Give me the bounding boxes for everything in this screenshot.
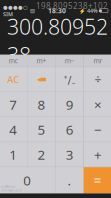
button[interactable]: ÷ [84, 67, 111, 92]
button[interactable]: Backspace [27, 67, 55, 92]
staticText: 8 [37, 96, 45, 113]
staticText: ▤ [30, 8, 35, 14]
staticText: ⚡ 44% [79, 7, 98, 14]
staticText: 3 [66, 146, 74, 163]
staticText: 1 [9, 146, 17, 163]
staticText: × [94, 96, 102, 113]
staticText: 2 [37, 146, 45, 163]
staticText: 300.8095238 [7, 12, 108, 69]
staticText: ⁺∕₋ [64, 72, 76, 87]
button[interactable]: × [84, 92, 111, 117]
staticText: ●●●●○ SIM [3, 4, 28, 18]
button[interactable]: 2 [27, 142, 55, 167]
staticText: − [94, 121, 102, 138]
button[interactable]: 7 [0, 92, 27, 117]
button[interactable]: − [84, 117, 111, 142]
staticText: m+ [36, 56, 46, 65]
button[interactable]: = [84, 167, 111, 193]
staticText: AC [7, 73, 19, 86]
button[interactable]: 0 [0, 167, 55, 193]
staticText: 7 [9, 96, 17, 113]
button[interactable]: m+ [27, 55, 55, 67]
staticText: by JMS.tool from magic.best [0, 185, 21, 192]
button[interactable]: 6 [56, 117, 84, 142]
button[interactable]: m− [56, 55, 84, 67]
staticText: 5 [37, 121, 45, 138]
button[interactable]: 1 [0, 142, 27, 167]
staticText: 18:30 [48, 6, 66, 15]
staticText: mr [93, 56, 102, 65]
staticText: ◀ [37, 76, 41, 83]
button[interactable]: + [84, 142, 111, 167]
staticText: + [94, 146, 102, 163]
staticText: m− [65, 56, 75, 65]
staticText: = [94, 171, 102, 189]
button[interactable]: ⁺∕₋ [56, 67, 84, 92]
staticText: mc [9, 56, 18, 65]
staticText: 6 [66, 121, 74, 138]
button[interactable]: 9 [56, 92, 84, 117]
button[interactable]: 3 [56, 142, 84, 167]
button[interactable]: 5 [27, 117, 55, 142]
staticText: . [67, 171, 71, 189]
staticText: 198.8095238+102 [36, 1, 108, 11]
button[interactable]: mc [0, 55, 27, 67]
button[interactable]: mr [84, 55, 111, 67]
staticText: 9 [66, 96, 74, 113]
button[interactable]: 4 [0, 117, 27, 142]
staticText: ÷ [94, 71, 101, 87]
button[interactable]: 8 [27, 92, 55, 117]
staticText: 4 [9, 121, 17, 138]
button[interactable]: AC [0, 67, 27, 92]
button[interactable]: . [55, 167, 83, 193]
staticText: 0 [23, 171, 31, 189]
